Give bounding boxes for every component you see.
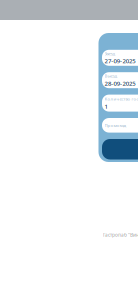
button[interactable]: Заезд [102,50,138,66]
staticText: 27-09-2025 [105,57,135,65]
staticText: 1 [105,103,108,110]
button[interactable]: Забронировать [102,139,138,159]
button[interactable]: Количество гостей [102,95,138,112]
staticText: Гастропаб "Вин [103,232,138,238]
staticText: Выезд [105,73,118,78]
button[interactable]: Промокод [102,118,138,133]
staticText: 28-09-2025 [105,80,135,87]
staticText: Заезд [105,51,116,56]
button[interactable]: Выезд [102,72,138,88]
staticText: Количество гостей [105,96,138,101]
staticText: Промокод [105,123,127,128]
